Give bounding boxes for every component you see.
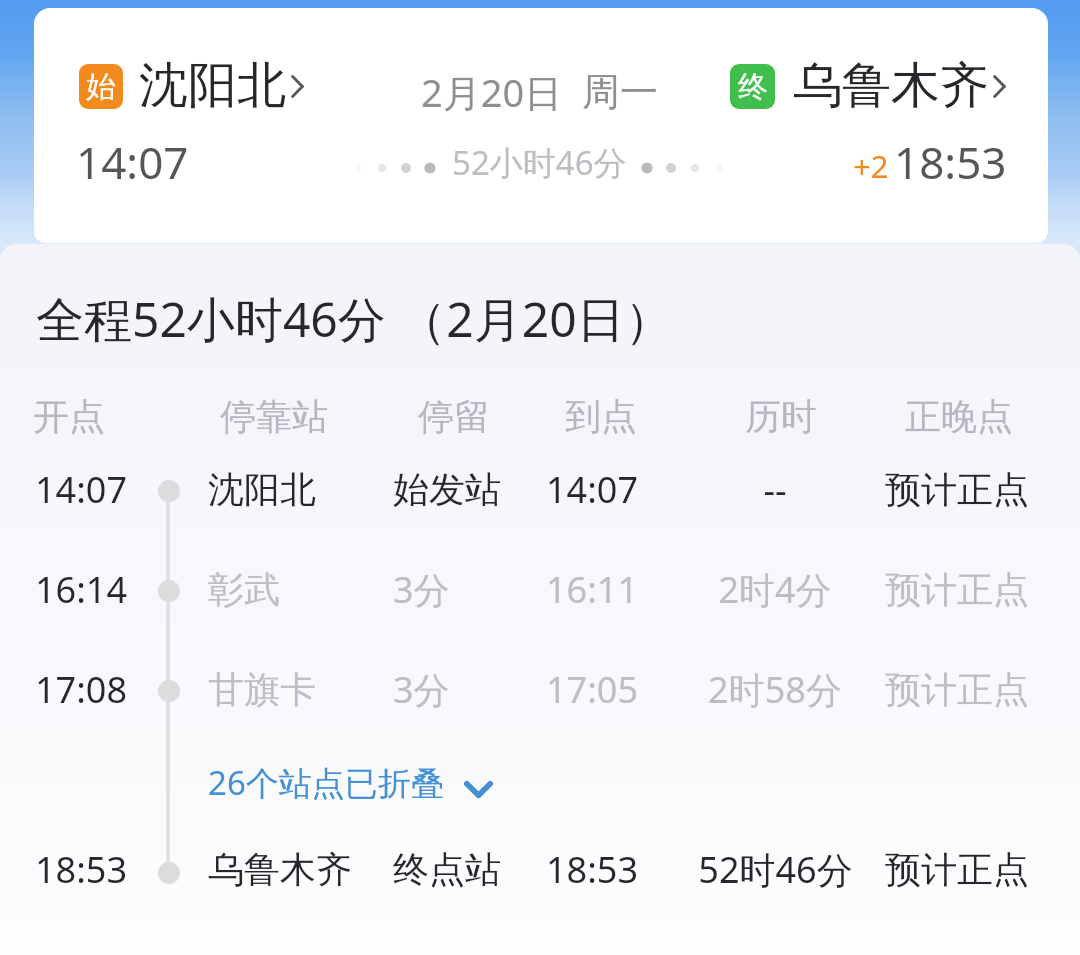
staticText: 全程52小时46分 （2月20日）	[36, 286, 673, 352]
staticText: 开点	[33, 394, 105, 439]
staticText: 彰武	[208, 567, 280, 612]
staticText: 2时58分	[708, 665, 842, 714]
staticText: 正晚点	[905, 394, 1013, 439]
staticText: 甘旗卡	[208, 667, 316, 712]
staticText: 乌鲁木齐	[208, 847, 352, 892]
staticText: 终	[738, 68, 768, 106]
staticText: 沈阳北	[208, 467, 316, 512]
staticText: 17:08	[35, 665, 128, 714]
staticText: 14:07	[76, 132, 189, 192]
staticText: 16:11	[546, 565, 639, 614]
button[interactable]: 始	[79, 55, 304, 117]
staticText: --	[763, 465, 787, 514]
staticText: 3分	[393, 565, 450, 614]
staticText: 16:14	[35, 565, 128, 614]
staticText: 沈阳北	[139, 55, 286, 117]
staticText: 预计正点	[885, 467, 1029, 512]
staticText: 预计正点	[885, 847, 1029, 892]
staticText: 18:53	[894, 132, 1007, 192]
staticText: +2	[853, 145, 889, 187]
staticText: 乌鲁木齐	[793, 55, 989, 117]
staticText: 预计正点	[885, 567, 1029, 612]
staticText: 历时	[745, 394, 817, 439]
other: Station detail	[291, 74, 304, 99]
button[interactable]: 18:53	[0, 841, 1080, 905]
staticText: 52时46分	[698, 845, 853, 894]
staticText: 14:07	[35, 465, 128, 514]
button[interactable]: 16:14	[0, 561, 1080, 625]
staticText: 终点站	[393, 847, 501, 892]
staticText: 14:07	[546, 465, 639, 514]
staticText: 3分	[393, 665, 450, 714]
staticText: 停靠站	[220, 394, 328, 439]
button[interactable]: 终	[730, 55, 1006, 117]
staticText: 18:53	[546, 845, 639, 894]
staticText: 周一	[582, 68, 658, 116]
staticText: 26个站点已折叠	[208, 760, 444, 805]
staticText: 52小时46分	[452, 140, 627, 185]
staticText: 始发站	[393, 467, 501, 512]
staticText: 17:05	[546, 665, 639, 714]
button[interactable]: 17:08	[0, 661, 1080, 725]
button[interactable]: 14:07	[0, 461, 1080, 525]
staticText: 2时4分	[718, 565, 832, 614]
other: Station detail	[993, 74, 1006, 99]
staticText: 始	[86, 68, 116, 106]
staticText: 到点	[565, 394, 637, 439]
staticText: 停留	[418, 394, 490, 439]
other: Expand	[464, 781, 493, 798]
staticText: 18:53	[35, 845, 128, 894]
staticText: 预计正点	[885, 667, 1029, 712]
staticText: 2月20日	[421, 66, 563, 118]
button[interactable]: 26个站点已折叠	[200, 755, 505, 813]
